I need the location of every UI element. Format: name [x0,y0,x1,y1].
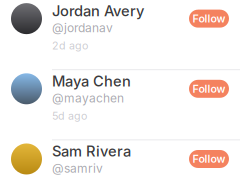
staticText: Jordan Avery [52,2,144,20]
staticText: @jordanav [52,21,113,35]
staticText: 2d ago [52,39,88,52]
button[interactable]: Sam Rivera [0,140,240,180]
button[interactable]: Jordan Avery [0,0,240,69]
button[interactable]: Follow [189,150,229,168]
staticText: @samriv [52,161,103,176]
staticText: 5d ago [52,109,87,122]
staticText: Sam Rivera [52,142,131,160]
staticText: Follow [192,12,225,25]
button[interactable]: Maya Chen [0,70,240,139]
staticText: Maya Chen [52,72,131,90]
staticText: @mayachen [52,91,124,105]
button[interactable]: Follow [189,10,229,28]
button[interactable]: Follow [189,80,229,98]
staticText: Follow [192,152,225,165]
staticText: Follow [192,82,225,95]
